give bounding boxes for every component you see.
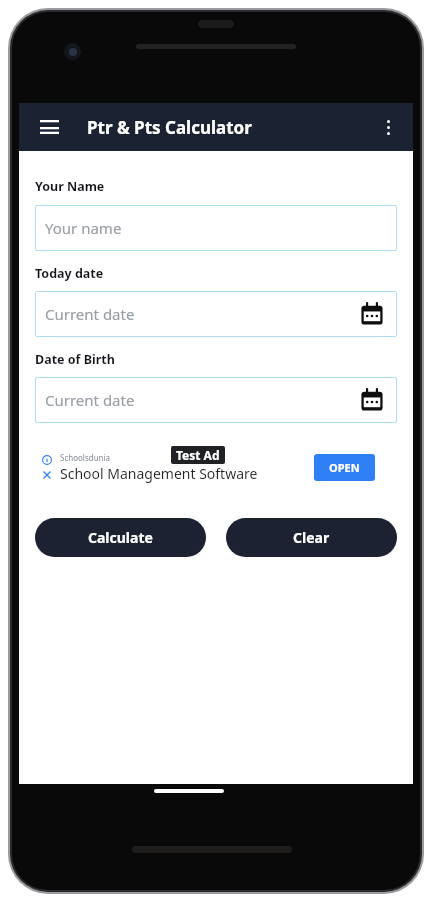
staticText: Test Ad <box>176 447 220 463</box>
staticText: School Management Software <box>60 464 258 483</box>
button[interactable]: Schoolsdunia <box>35 444 397 490</box>
staticText: Ptr & Pts Calculator <box>87 116 252 139</box>
staticText: Current date <box>45 390 357 410</box>
staticText: Schoolsdunia <box>60 452 111 463</box>
staticText: Calculate <box>88 528 153 547</box>
button[interactable]: Your name <box>35 205 397 251</box>
button[interactable]: Calculate <box>35 518 206 557</box>
button[interactable]: More options <box>367 106 409 148</box>
staticText: OPEN <box>329 460 360 475</box>
staticText: Clear <box>293 528 330 547</box>
button[interactable]: Pick date <box>357 385 387 415</box>
staticText: Your Name <box>35 178 105 195</box>
button[interactable]: Open navigation menu <box>29 107 69 147</box>
button[interactable]: Current date <box>35 291 397 337</box>
button[interactable]: Current date <box>35 377 397 423</box>
staticText: Your name <box>45 218 387 238</box>
button[interactable]: Pick date <box>357 299 387 329</box>
button[interactable]: Clear <box>226 518 397 557</box>
staticText: Date of Birth <box>35 351 115 368</box>
staticText: Current date <box>45 304 357 324</box>
staticText: Today date <box>35 265 104 282</box>
button[interactable]: OPEN <box>314 454 375 481</box>
